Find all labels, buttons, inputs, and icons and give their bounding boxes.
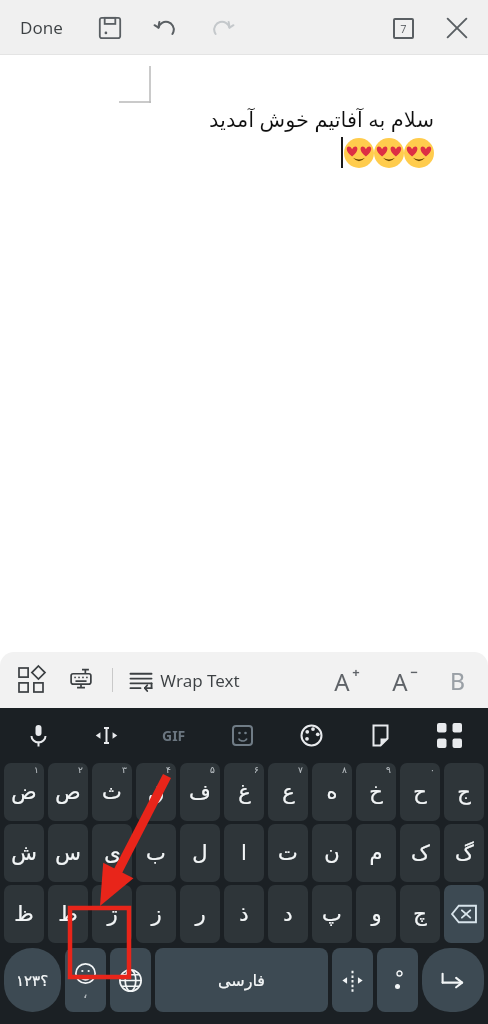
staticText: Done: [20, 16, 63, 39]
staticText: ۴: [166, 765, 171, 775]
staticText: ا: [241, 841, 247, 865]
button[interactable]: Apps: [12, 661, 50, 699]
staticText: ب: [146, 841, 166, 865]
staticText: ۸: [342, 765, 347, 775]
staticText: ف: [189, 780, 211, 804]
staticText: ۷: [298, 765, 303, 775]
button[interactable]: ج: [444, 763, 484, 821]
staticText: ذ: [239, 902, 249, 926]
staticText: ۹: [386, 765, 391, 775]
button[interactable]: Voice input: [4, 708, 72, 763]
button[interactable]: GIF: [140, 708, 208, 763]
staticText: ۰: [430, 765, 435, 775]
button[interactable]: ذ: [224, 885, 264, 943]
staticText: پ: [322, 902, 342, 926]
button[interactable]: ث: [92, 763, 132, 821]
button[interactable]: Cursor control: [332, 948, 373, 1012]
button[interactable]: ی: [92, 824, 132, 882]
staticText: ل: [192, 841, 208, 865]
button[interactable]: ع: [268, 763, 308, 821]
staticText: ض: [11, 780, 37, 804]
staticText: ۱: [34, 765, 39, 775]
button[interactable]: ر: [180, 885, 220, 943]
button[interactable]: ا: [224, 824, 264, 882]
button[interactable]: Done: [14, 11, 69, 44]
button[interactable]: Enter: [422, 948, 484, 1012]
button[interactable]: Emoji: [65, 948, 106, 1012]
staticText: ع: [282, 780, 295, 804]
button[interactable]: Text editing: [72, 708, 140, 763]
button[interactable]: ه: [312, 763, 352, 821]
staticText: ۲: [78, 765, 83, 775]
button[interactable]: Redo: [205, 11, 239, 45]
button[interactable]: Tabs, 7 open: [386, 11, 420, 45]
staticText: ک: [411, 841, 430, 865]
staticText: ه: [326, 780, 338, 804]
button[interactable]: و: [356, 885, 396, 943]
staticText: چ: [413, 902, 427, 926]
button[interactable]: ح: [400, 763, 440, 821]
button[interactable]: ظ: [4, 885, 44, 943]
button[interactable]: ق: [136, 763, 176, 821]
staticText: فارسی: [218, 971, 265, 990]
button[interactable]: خ: [356, 763, 396, 821]
button[interactable]: ک: [400, 824, 440, 882]
button[interactable]: ت: [268, 824, 308, 882]
button[interactable]: Save: [93, 11, 127, 45]
staticText: ی: [104, 841, 121, 865]
staticText: ز: [151, 902, 162, 926]
button[interactable]: ژ: [92, 885, 132, 943]
staticText: Wrap Text: [160, 669, 240, 692]
button[interactable]: Increase font size: [324, 659, 366, 701]
staticText: ر: [195, 902, 206, 926]
button[interactable]: ص: [48, 763, 88, 821]
button[interactable]: ز: [136, 885, 176, 943]
staticText: و: [371, 902, 382, 926]
button[interactable]: س: [48, 824, 88, 882]
button[interactable]: Diacritics: [377, 948, 418, 1012]
button[interactable]: گ: [444, 824, 484, 882]
staticText: ش: [11, 841, 37, 865]
staticText: −: [410, 663, 418, 681]
button[interactable]: Undo: [149, 11, 183, 45]
button[interactable]: پ: [312, 885, 352, 943]
button[interactable]: Change language: [110, 948, 151, 1012]
staticText: ق: [148, 780, 165, 804]
button[interactable]: Clipboard: [346, 708, 415, 763]
staticText: د: [283, 902, 293, 926]
button[interactable]: ل: [180, 824, 220, 882]
button[interactable]: غ: [224, 763, 264, 821]
button[interactable]: Stickers: [208, 708, 277, 763]
button[interactable]: ب: [136, 824, 176, 882]
button[interactable]: م: [356, 824, 396, 882]
button[interactable]: چ: [400, 885, 440, 943]
staticText: ث: [102, 780, 122, 804]
button[interactable]: Themes: [277, 708, 346, 763]
button[interactable]: د: [268, 885, 308, 943]
button[interactable]: فارسی: [155, 948, 328, 1012]
button[interactable]: B: [438, 661, 476, 699]
button[interactable]: ۱۲۳؟: [4, 948, 61, 1012]
staticText: ت: [278, 841, 298, 865]
button[interactable]: ن: [312, 824, 352, 882]
button[interactable]: ض: [4, 763, 44, 821]
staticText: غ: [238, 780, 251, 804]
staticText: ۳: [122, 765, 127, 775]
button[interactable]: Backspace: [444, 885, 484, 943]
button[interactable]: ط: [48, 885, 88, 943]
staticText: س: [55, 841, 81, 865]
staticText: GIF: [162, 726, 186, 745]
button[interactable]: More options: [415, 708, 484, 763]
staticText: م: [369, 841, 383, 865]
button[interactable]: Decrease font size: [382, 659, 424, 701]
button[interactable]: Close: [440, 11, 474, 45]
staticText: ۵: [210, 765, 215, 775]
button[interactable]: ش: [4, 824, 44, 882]
button[interactable]: Wrap Text: [125, 664, 244, 696]
button[interactable]: ف: [180, 763, 220, 821]
staticText: ۶: [254, 765, 259, 775]
staticText: ص: [55, 780, 81, 804]
staticText: A: [334, 665, 350, 698]
staticText: 7: [400, 21, 407, 36]
button[interactable]: Keyboard: [62, 661, 100, 699]
